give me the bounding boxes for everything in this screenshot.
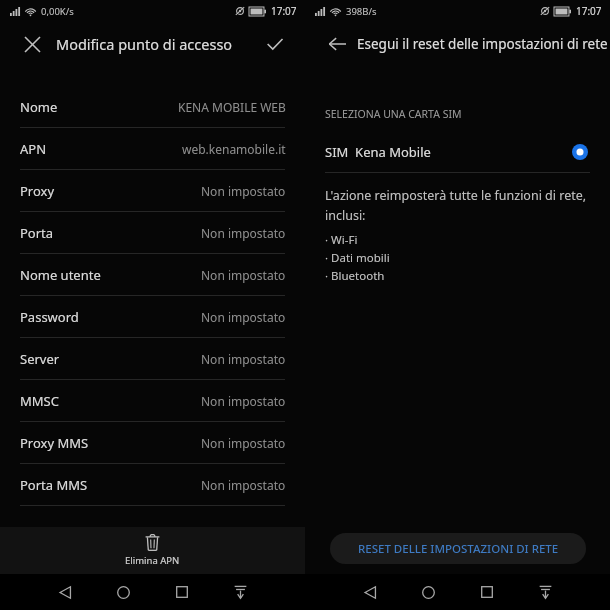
staticText: RESET DELLE IMPOSTAZIONI DI RETE bbox=[358, 541, 559, 557]
button[interactable]: Nome utente bbox=[0, 254, 305, 296]
staticText: Esegui il reset delle impostazioni di re… bbox=[357, 35, 608, 53]
button[interactable]: Proxy MMS bbox=[0, 422, 305, 464]
button[interactable]: Chiudi bbox=[18, 30, 46, 58]
staticText: web.kenamobile.it bbox=[182, 141, 286, 157]
button[interactable]: Porta bbox=[0, 212, 305, 254]
staticText: · Wi-Fi bbox=[325, 232, 358, 248]
staticText: Modifica punto di accesso bbox=[56, 34, 233, 54]
staticText: Non impostato bbox=[201, 183, 286, 199]
staticText: SELEZIONA UNA CARTA SIM bbox=[325, 107, 462, 121]
staticText: 398B/s bbox=[346, 5, 377, 18]
button[interactable]: SIM Kena Mobile bbox=[305, 137, 610, 173]
button[interactable]: Proxy bbox=[0, 170, 305, 212]
staticText: 17:07 bbox=[271, 4, 297, 18]
staticText: MMSC bbox=[20, 392, 59, 410]
staticText: Nome bbox=[20, 98, 58, 116]
staticText: Proxy bbox=[20, 182, 55, 200]
staticText: Server bbox=[20, 350, 60, 368]
staticText: SIM Kena Mobile bbox=[325, 143, 431, 161]
button[interactable]: Porta MMS bbox=[0, 464, 305, 506]
staticText: Porta MMS bbox=[20, 476, 88, 494]
staticText: Nome utente bbox=[20, 266, 101, 284]
staticText: · Dati mobili bbox=[325, 250, 390, 266]
button[interactable]: APN bbox=[0, 128, 305, 170]
staticText: Proxy MMS bbox=[20, 434, 89, 452]
button[interactable]: App recenti bbox=[164, 574, 200, 610]
staticText: Password bbox=[20, 308, 79, 326]
button[interactable]: Indietro bbox=[47, 574, 83, 610]
staticText: · Bluetooth bbox=[325, 268, 385, 284]
staticText: Non impostato bbox=[201, 477, 286, 493]
staticText: Elimina APN bbox=[125, 554, 180, 567]
staticText: L'azione reimposterà tutte le funzioni d… bbox=[325, 187, 587, 204]
staticText: Non impostato bbox=[201, 225, 286, 241]
staticText: inclusi: bbox=[325, 207, 366, 224]
button[interactable]: Home bbox=[410, 574, 446, 610]
button[interactable]: App recenti bbox=[469, 574, 505, 610]
button[interactable]: Indietro bbox=[323, 30, 351, 58]
staticText: Non impostato bbox=[201, 435, 286, 451]
staticText: 0,00K/s bbox=[41, 5, 74, 18]
button[interactable]: MMSC bbox=[0, 380, 305, 422]
button[interactable]: Salva bbox=[261, 30, 289, 58]
staticText: Non impostato bbox=[201, 393, 286, 409]
button[interactable]: Server bbox=[0, 338, 305, 380]
staticText: 17:07 bbox=[576, 4, 602, 18]
staticText: Non impostato bbox=[201, 309, 286, 325]
staticText: KENA MOBILE WEB bbox=[178, 99, 286, 115]
button[interactable]: Indietro bbox=[352, 574, 388, 610]
button[interactable]: Home bbox=[105, 574, 141, 610]
button[interactable]: Nascondi barra bbox=[527, 574, 563, 610]
staticText: Non impostato bbox=[201, 351, 286, 367]
staticText: Non impostato bbox=[201, 267, 286, 283]
staticText: Porta bbox=[20, 224, 54, 242]
button[interactable]: Nome bbox=[0, 86, 305, 128]
staticText: APN bbox=[20, 140, 47, 158]
button[interactable]: Nascondi barra bbox=[222, 574, 258, 610]
button[interactable]: RESET DELLE IMPOSTAZIONI DI RETE bbox=[330, 533, 586, 564]
button[interactable]: Password bbox=[0, 296, 305, 338]
button[interactable]: Elimina APN bbox=[0, 527, 305, 574]
